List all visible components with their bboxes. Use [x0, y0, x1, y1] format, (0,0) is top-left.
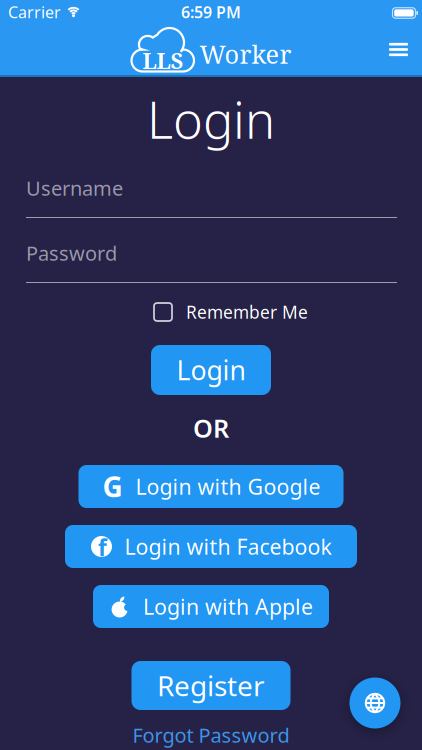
button[interactable]: f	[65, 525, 357, 568]
staticText: f	[98, 532, 107, 562]
staticText: Carrier	[8, 1, 61, 23]
staticText: Login	[147, 85, 275, 153]
button[interactable]: G	[78, 465, 343, 508]
button[interactable]: Login	[151, 345, 271, 395]
staticText: 6:59 PM	[181, 1, 241, 23]
button[interactable]: Remember Me	[134, 303, 288, 321]
staticText: Login	[176, 352, 245, 388]
staticText: LLS	[142, 45, 183, 75]
button[interactable]	[389, 33, 422, 66]
button[interactable]: Register	[131, 661, 290, 710]
button[interactable]	[349, 677, 400, 728]
button[interactable]: Forgot Password	[132, 724, 289, 746]
staticText: Remember Me	[186, 300, 308, 323]
staticText: Worker	[199, 37, 291, 71]
staticText: Login with Facebook	[124, 532, 331, 561]
staticText: Register	[157, 667, 265, 704]
staticText: Forgot Password	[132, 722, 289, 748]
staticText: Login with Google	[135, 472, 320, 501]
button[interactable]: Password	[26, 243, 397, 283]
staticText: Password	[26, 240, 117, 266]
button[interactable]: Login with Apple	[93, 585, 329, 628]
staticText: Login with Apple	[143, 592, 313, 621]
button[interactable]: Username	[26, 178, 397, 218]
staticText: Username	[26, 175, 123, 201]
staticText: G	[102, 468, 122, 505]
staticText: OR	[193, 411, 229, 445]
